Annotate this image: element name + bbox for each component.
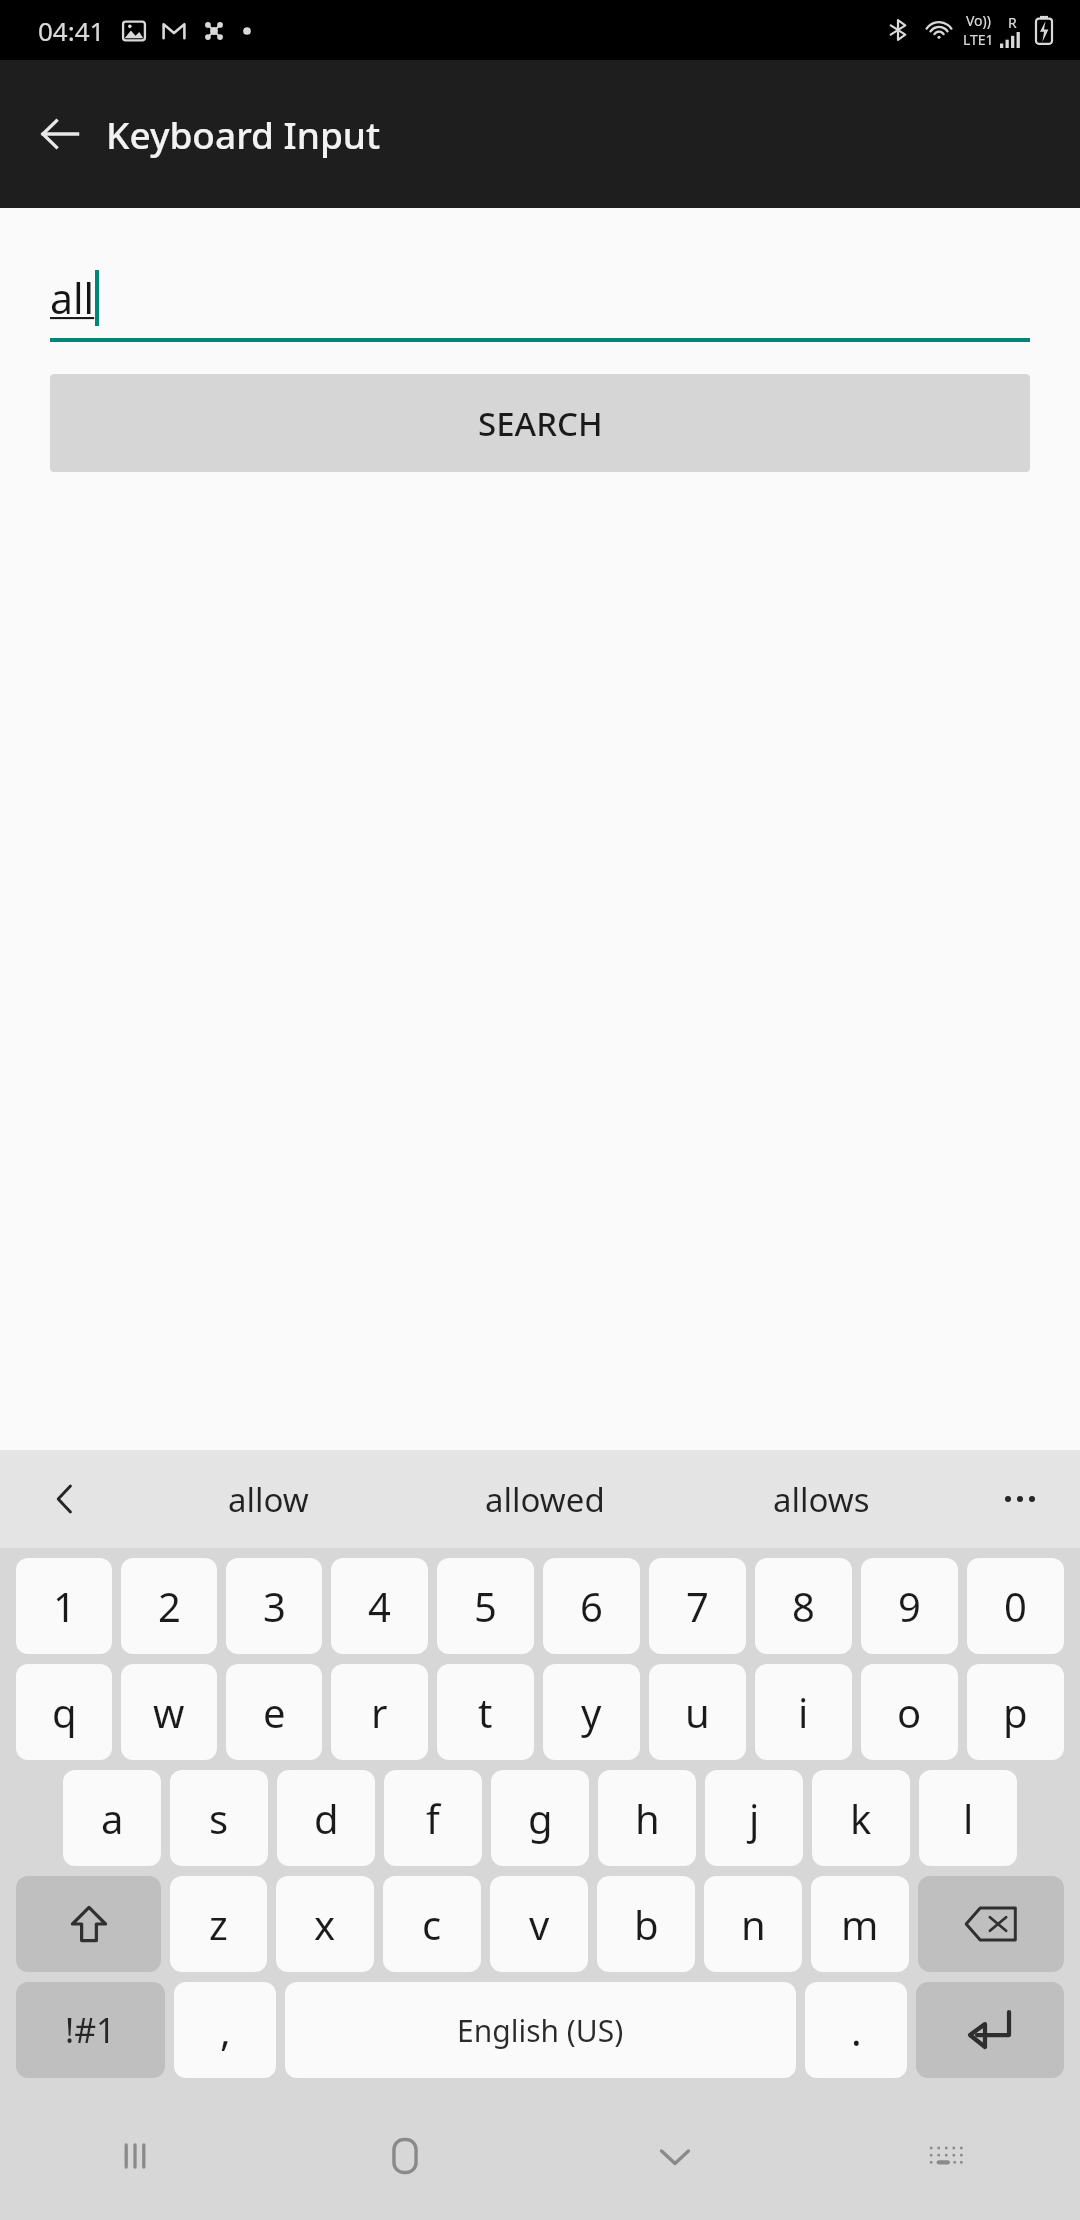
button[interactable]: w [121,1664,217,1760]
staticText: h [635,1791,660,1845]
staticText: m [841,1897,879,1951]
button[interactable]: 5 [437,1558,534,1654]
staticText: k [850,1791,872,1845]
staticText: allowed [485,1477,605,1522]
staticText: b [634,1897,659,1951]
button[interactable]: l [919,1770,1017,1866]
button[interactable]: all [50,270,1030,342]
button[interactable]: Back [22,96,98,172]
staticText: 9 [898,1579,921,1633]
button[interactable]: 9 [861,1558,958,1654]
button[interactable]: f [384,1770,482,1866]
button[interactable]: SEARCH [50,374,1030,472]
staticText: q [52,1685,77,1739]
button[interactable]: o [861,1664,958,1760]
button[interactable]: c [383,1876,481,1972]
staticText: t [478,1685,493,1739]
staticText: !#1 [65,2007,116,2053]
button[interactable]: English (US) [285,1982,796,2078]
staticText: c [422,1897,442,1951]
staticText: p [1003,1685,1028,1739]
button[interactable]: h [598,1770,696,1866]
staticText: l [963,1791,974,1845]
button[interactable]: z [170,1876,267,1972]
button[interactable]: Home [270,2092,540,2220]
staticText: all [50,270,95,326]
button[interactable]: k [812,1770,910,1866]
button[interactable]: . [805,1982,907,2078]
button[interactable]: 8 [755,1558,852,1654]
button[interactable]: 3 [226,1558,322,1654]
staticText: x [314,1897,336,1951]
staticText: v [529,1897,550,1951]
button[interactable]: d [277,1770,375,1866]
button[interactable]: Shift [16,1876,161,1972]
button[interactable]: g [491,1770,589,1866]
button[interactable]: q [16,1664,112,1760]
staticText: 04:41 [38,13,105,48]
staticText: 5 [474,1579,497,1633]
staticText: 2 [158,1579,181,1633]
button[interactable]: t [437,1664,534,1760]
staticText: 7 [686,1579,709,1633]
staticText: d [314,1791,339,1845]
staticText: o [897,1685,922,1739]
button[interactable]: s [170,1770,268,1866]
staticText: 0 [1004,1579,1027,1633]
button[interactable]: j [705,1770,803,1866]
staticText: 1 [53,1579,76,1633]
staticText: g [528,1791,553,1845]
button[interactable]: 6 [543,1558,640,1654]
staticText: a [101,1791,124,1845]
staticText: j [749,1791,760,1845]
button[interactable]: Backspace [918,1876,1064,1972]
button[interactable]: Enter [916,1982,1064,2078]
button[interactable]: allow [130,1450,406,1548]
staticText: w [153,1685,185,1739]
staticText: 4 [368,1579,391,1633]
staticText: z [209,1897,228,1951]
staticText: n [741,1897,766,1951]
button[interactable]: b [597,1876,695,1972]
button[interactable]: 7 [649,1558,746,1654]
button[interactable]: !#1 [16,1982,165,2078]
button[interactable]: n [704,1876,802,1972]
staticText: e [263,1685,286,1739]
staticText: f [426,1791,440,1845]
button[interactable]: x [276,1876,374,1972]
button[interactable]: allowed [406,1450,683,1548]
button[interactable]: 4 [331,1558,428,1654]
button[interactable]: y [543,1664,640,1760]
staticText: , [220,2003,231,2057]
button[interactable]: Recents [0,2092,270,2220]
button[interactable]: 2 [121,1558,217,1654]
staticText: LTE1 [963,30,994,49]
staticText: allow [228,1477,309,1522]
staticText: 3 [263,1579,286,1633]
button[interactable]: e [226,1664,322,1760]
button[interactable]: m [811,1876,909,1972]
staticText: SEARCH [478,401,603,446]
button[interactable]: i [755,1664,852,1760]
button[interactable]: r [331,1664,428,1760]
staticText: r [371,1685,388,1739]
staticText: u [685,1685,710,1739]
button[interactable]: p [967,1664,1064,1760]
staticText: 6 [580,1579,603,1633]
staticText: s [209,1791,229,1845]
button[interactable]: a [63,1770,161,1866]
button[interactable]: , [174,1982,276,2078]
button[interactable]: allows [683,1450,960,1548]
button[interactable]: 1 [16,1558,112,1654]
staticText: Vo)) [966,11,991,30]
staticText: y [581,1685,602,1739]
staticText: i [798,1685,809,1739]
button[interactable]: Previous suggestions [0,1450,130,1548]
staticText: allows [773,1477,870,1522]
button[interactable]: v [490,1876,588,1972]
button[interactable]: Keyboard layout [810,2092,1080,2220]
button[interactable]: Hide keyboard [540,2092,810,2220]
button[interactable]: More options [960,1450,1080,1548]
button[interactable]: 0 [967,1558,1064,1654]
button[interactable]: u [649,1664,746,1760]
